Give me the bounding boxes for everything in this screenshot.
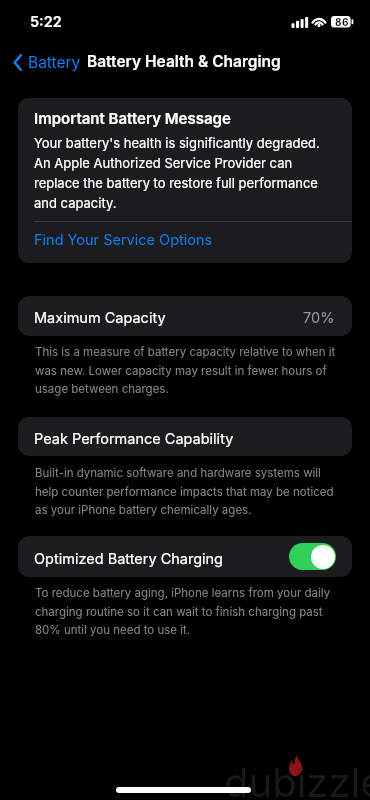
staticText: Your battery's health is significantly d…	[34, 135, 321, 211]
button[interactable]: Optimized Battery Charging toggle, on	[289, 543, 336, 570]
staticText: Peak Performance Capability	[34, 430, 234, 448]
staticText: Optimized Battery Charging	[34, 550, 224, 568]
staticText: Maximum Capacity	[34, 309, 166, 327]
button[interactable]: Maximum Capacity	[18, 296, 352, 336]
button[interactable]: Peak Performance Capability	[18, 417, 352, 456]
staticText: 5:22	[30, 13, 62, 31]
staticText: Important Battery Message	[34, 109, 231, 127]
button[interactable]: Battery	[9, 50, 85, 75]
staticText: 70%	[303, 309, 335, 327]
staticText: 86	[335, 16, 349, 28]
staticText: Built-in dynamic software and hardware s…	[35, 466, 337, 516]
staticText: To reduce battery aging, iPhone learns f…	[35, 586, 337, 636]
staticText: Battery Health & Charging	[87, 52, 281, 71]
staticText: dubizzle	[224, 758, 370, 800]
button[interactable]: Find Your Service Options	[18, 221, 352, 263]
staticText: Find Your Service Options	[34, 231, 213, 249]
staticText: Battery	[28, 53, 81, 72]
staticText: This is a measure of battery capacity re…	[35, 345, 337, 395]
